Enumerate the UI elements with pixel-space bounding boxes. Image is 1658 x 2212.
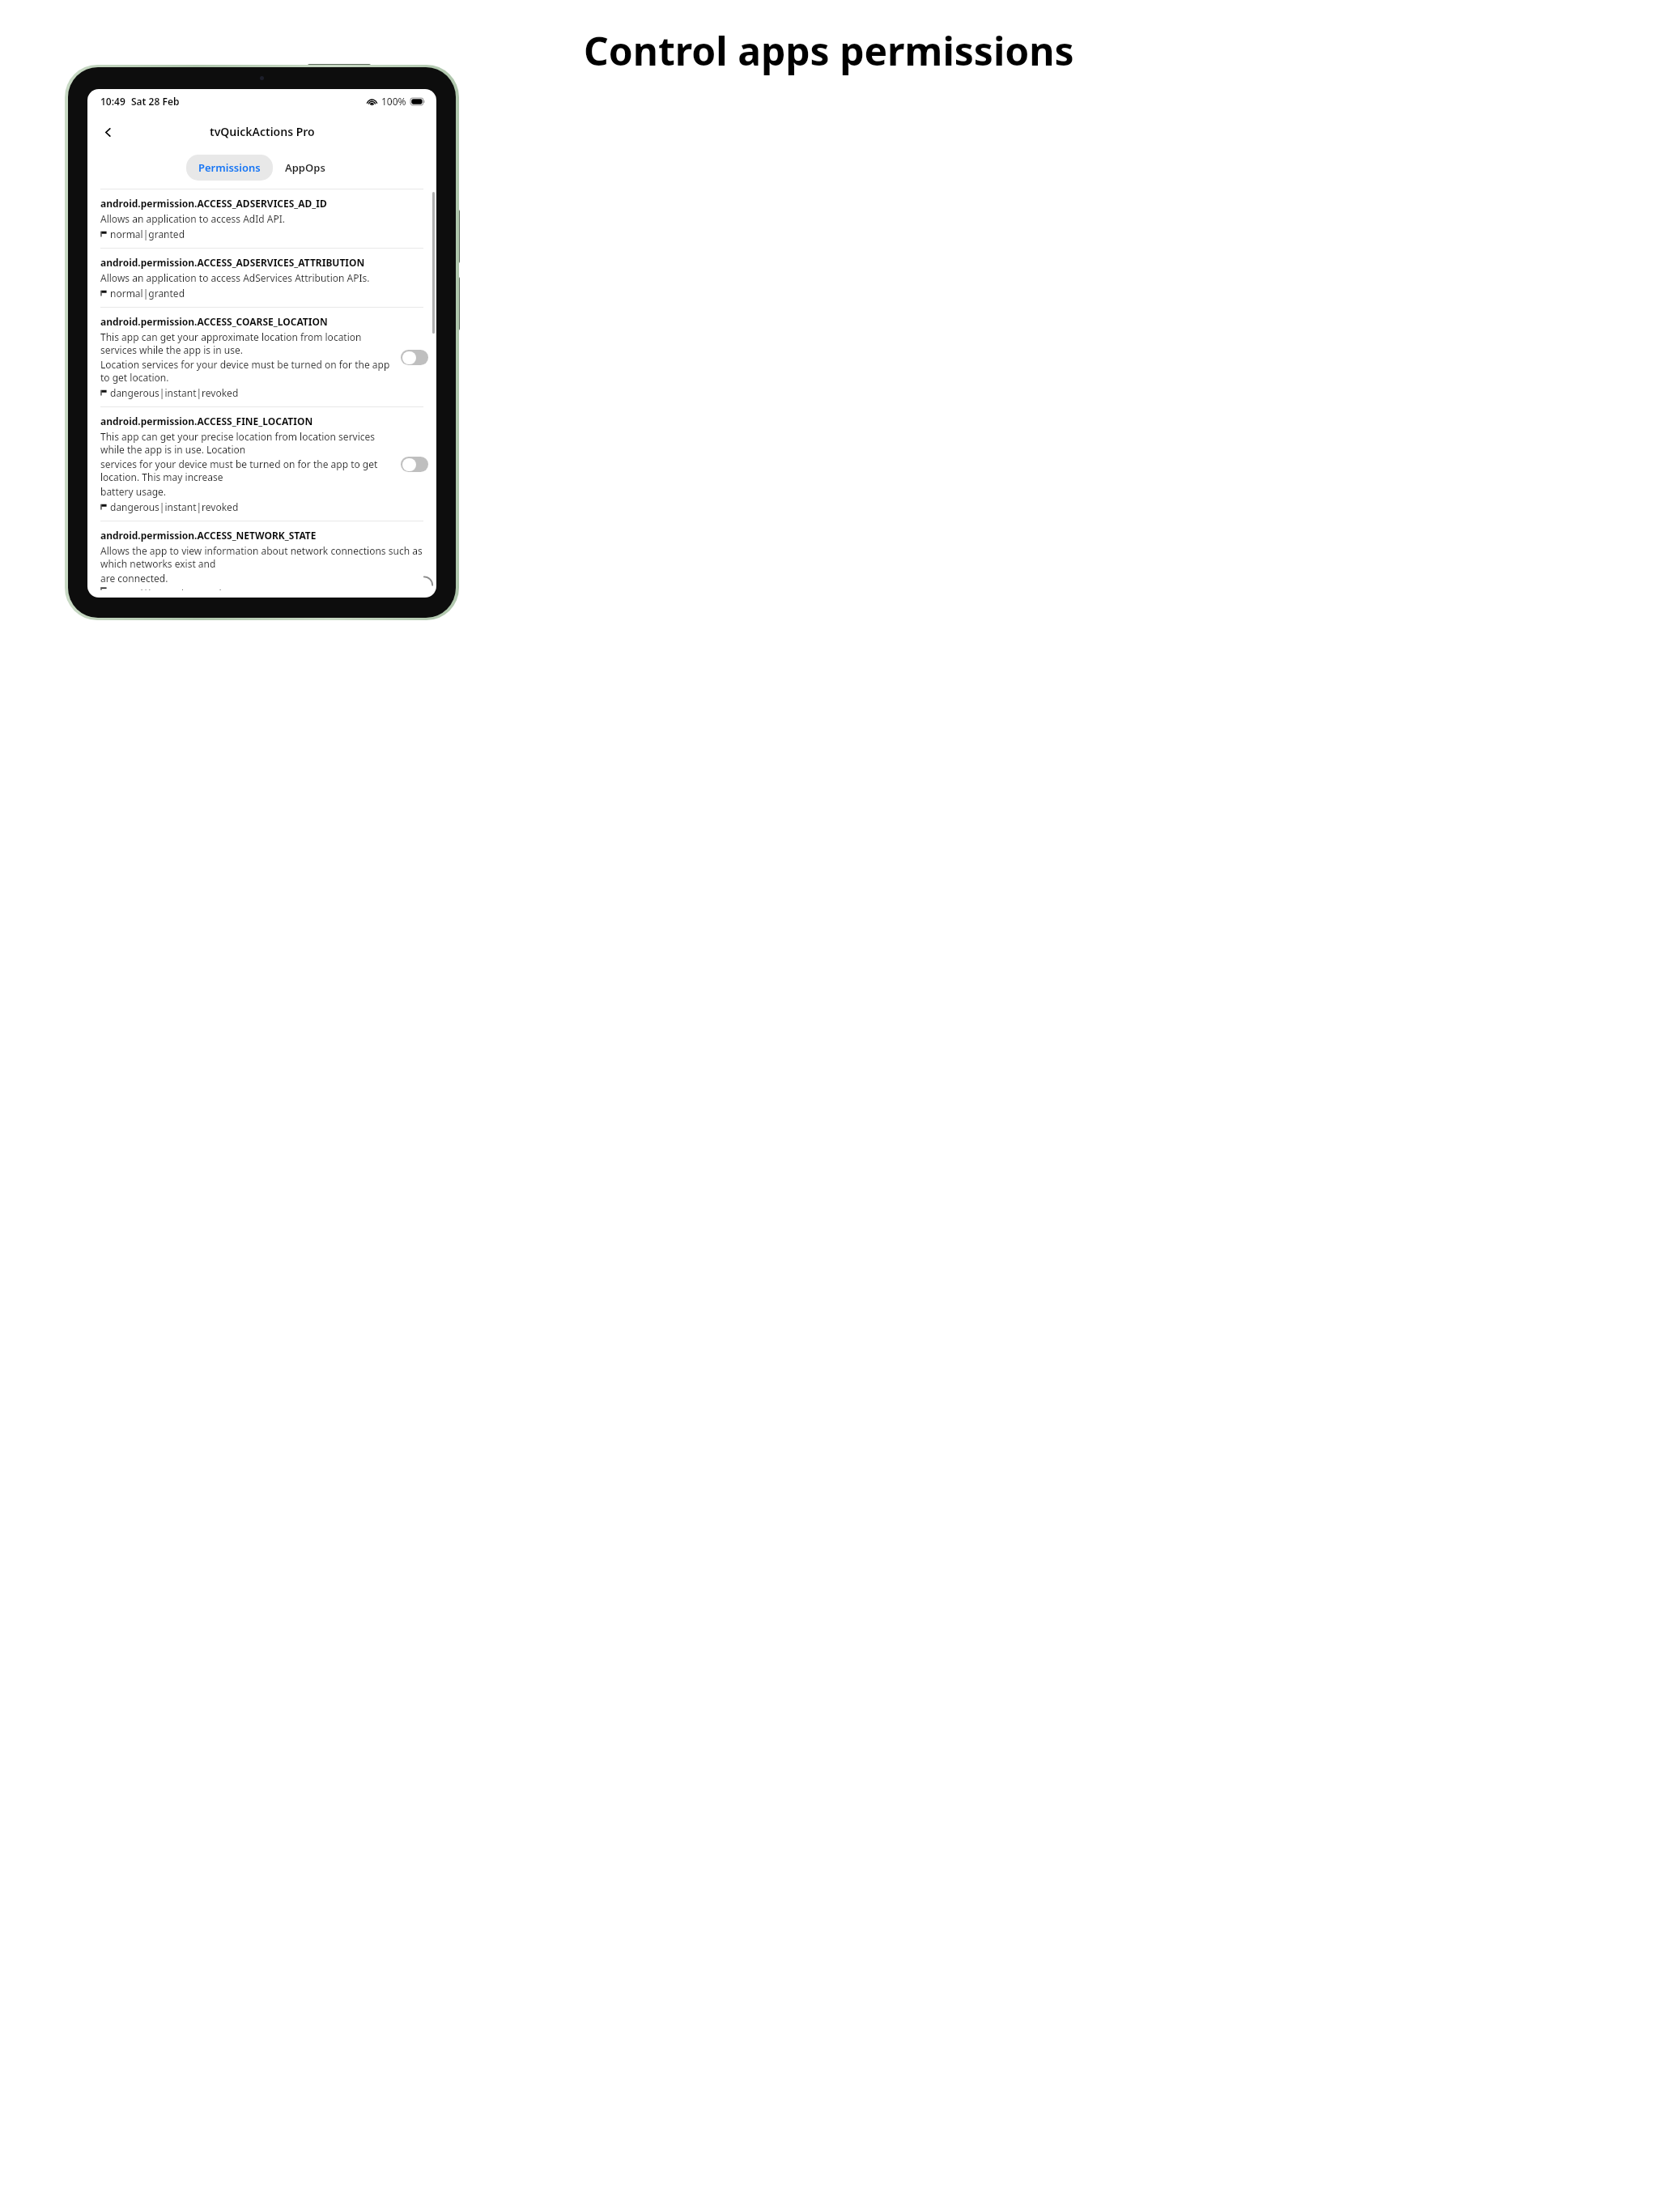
staticText: android.permission.ACCESS_ADSERVICES_AD_…: [100, 197, 327, 210]
button[interactable]: AppOps: [273, 155, 338, 181]
staticText: Control apps permissions: [584, 24, 1074, 77]
staticText: Allows the app to view information about…: [100, 544, 428, 570]
staticText: This app can get your precise location f…: [100, 430, 394, 456]
staticText: normal|granted: [110, 287, 185, 300]
staticText: Sat 28 Feb: [131, 95, 180, 108]
staticText: are connected.: [100, 572, 168, 585]
button[interactable]: android.permission.ACCESS_COARSE_LOCATIO…: [87, 308, 436, 406]
staticText: android.permission.ACCESS_NETWORK_STATE: [100, 529, 317, 542]
button[interactable]: android.permission.ACCESS_ADSERVICES_AD_…: [87, 189, 436, 248]
staticText: services for your device must be turned …: [100, 457, 394, 483]
button[interactable]: android.permission.ACCESS_ADSERVICES_ATT…: [87, 249, 436, 307]
staticText: dangerous|instant|revoked: [110, 500, 239, 513]
staticText: Allows an application to access AdId API…: [100, 212, 286, 225]
staticText: Permissions: [198, 160, 261, 175]
staticText: Allows an application to access AdServic…: [100, 271, 370, 284]
staticText: dangerous|instant|revoked: [110, 386, 239, 399]
button[interactable]: Toggle permission: [401, 457, 428, 472]
staticText: 10:49: [100, 95, 125, 108]
staticText: tvQuickActions Pro: [210, 124, 315, 139]
button[interactable]: Permissions: [186, 155, 273, 181]
staticText: AppOps: [285, 160, 325, 175]
staticText: normal|granted: [110, 228, 185, 240]
button[interactable]: Toggle permission: [401, 350, 428, 365]
staticText: This app can get your approximate locati…: [100, 330, 394, 356]
staticText: Location services for your device must b…: [100, 358, 394, 384]
button[interactable]: android.permission.ACCESS_FINE_LOCATION: [87, 407, 436, 521]
button[interactable]: Back: [96, 120, 120, 144]
button[interactable]: android.permission.ACCESS_NETWORK_STATE: [87, 521, 436, 598]
staticText: 100%: [381, 95, 406, 108]
staticText: battery usage.: [100, 485, 167, 498]
staticText: android.permission.ACCESS_COARSE_LOCATIO…: [100, 315, 328, 328]
staticText: android.permission.ACCESS_ADSERVICES_ATT…: [100, 256, 365, 269]
staticText: android.permission.ACCESS_FINE_LOCATION: [100, 415, 313, 428]
